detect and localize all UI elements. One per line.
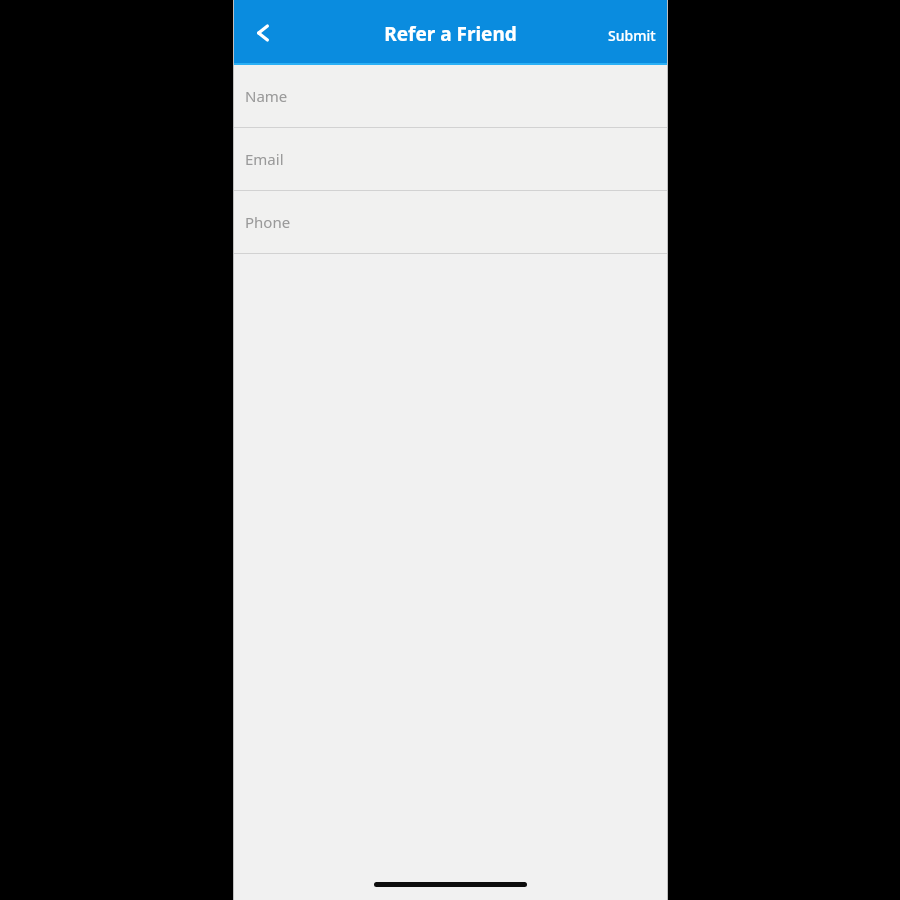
staticText: Submit: [608, 26, 656, 45]
button[interactable]: Email: [233, 128, 668, 190]
staticText: Refer a Friend: [384, 21, 517, 47]
button[interactable]: Phone: [233, 191, 668, 253]
staticText: Email: [245, 149, 284, 169]
button[interactable]: Name: [233, 65, 668, 127]
staticText: Phone: [245, 212, 291, 232]
button[interactable]: Submit: [604, 20, 660, 51]
staticText: Name: [245, 86, 288, 106]
button[interactable]: Back: [241, 11, 285, 55]
